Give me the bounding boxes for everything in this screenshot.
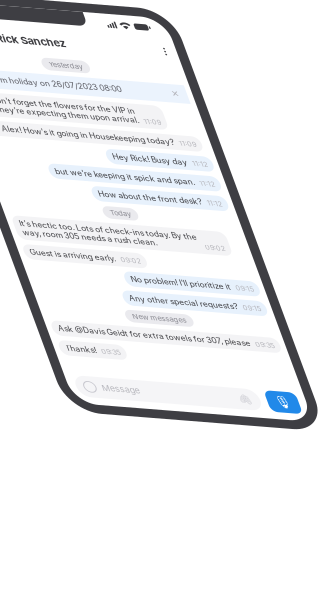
staticText: How about the front desk? bbox=[114, 212, 218, 222]
staticText: 11:12 bbox=[223, 192, 238, 200]
staticText: Guest is arriving early. bbox=[21, 285, 107, 295]
staticText: New messages bbox=[103, 350, 157, 359]
staticText: 09:15 bbox=[220, 309, 238, 317]
staticText: way, room 305 needs a rush clean. bbox=[21, 263, 156, 273]
staticText: And don't forget the flowers for the VIP… bbox=[21, 114, 183, 124]
staticText: No problem! I'll prioritize it bbox=[115, 307, 215, 317]
staticText: 11:12 bbox=[223, 170, 238, 178]
staticText: 11:09 bbox=[217, 148, 234, 156]
staticText: Any other special requests? bbox=[106, 329, 215, 339]
staticText: 09:15 bbox=[220, 331, 238, 339]
staticText: 11:09 bbox=[189, 126, 206, 134]
staticText: Hey Rick! Busy day bbox=[143, 168, 218, 178]
staticText: 207. They're expecting them upon arrival… bbox=[21, 124, 184, 134]
staticText: 11:12 bbox=[223, 214, 238, 222]
staticText: It's hectic too. Lots of check-ins today… bbox=[21, 253, 199, 263]
staticText: Hey Alex! How's it going in Housekeeping… bbox=[21, 146, 212, 156]
staticText: but we're keeping it spick and span. bbox=[78, 190, 218, 200]
staticText: 09:02 bbox=[112, 287, 132, 295]
staticText: Back from holiday on 26/07/2023 08:00 bbox=[23, 90, 178, 100]
staticText: 09:35 bbox=[57, 394, 76, 402]
staticText: Today bbox=[119, 233, 140, 242]
staticText: Ask @Davis Geidt for extra towels for 30… bbox=[21, 370, 214, 380]
